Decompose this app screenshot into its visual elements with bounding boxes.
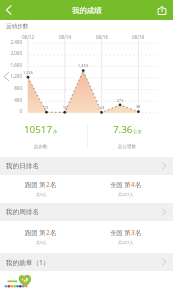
staticText: 22 <box>38 105 54 110</box>
staticText: 7.36 <box>113 123 133 136</box>
staticText: 名 <box>50 229 57 237</box>
staticText: 全国 第 <box>110 180 131 189</box>
staticText: 名 <box>50 181 57 189</box>
staticText: 我的成绩 <box>72 6 102 15</box>
staticText: 我的周排名 <box>6 208 39 216</box>
staticText: 跑团 第 <box>25 180 46 189</box>
button[interactable]: 全国 第 <box>83 223 169 251</box>
staticText: 我的日排名 <box>6 162 39 170</box>
button[interactable]: 跑团 第 <box>0 175 84 203</box>
staticText: 4 <box>131 180 135 189</box>
button[interactable]: Medal <box>2 273 36 295</box>
staticText: 步 <box>53 129 58 135</box>
staticText: 08/14 <box>56 34 74 40</box>
staticText: 公里 <box>133 129 142 135</box>
staticText: 2 <box>46 228 50 237</box>
staticText: 总公里数 <box>118 144 136 150</box>
staticText: 0 <box>0 108 22 114</box>
button[interactable]: Back <box>0 0 20 20</box>
button[interactable]: 全国 第 <box>83 175 169 203</box>
staticText: 我的勋章（1） <box>6 258 50 267</box>
staticText: 1,200 <box>0 73 22 79</box>
staticText: 08/16 <box>93 34 111 40</box>
staticText: 全国 第 <box>110 228 131 237</box>
staticText: 38 <box>130 104 146 109</box>
staticText: 16 <box>57 105 73 110</box>
staticText: 3 <box>131 228 135 237</box>
staticText: 2,400 <box>0 39 22 45</box>
staticText: 1,226 <box>20 70 36 75</box>
button[interactable]: Previous week <box>0 70 13 83</box>
staticText: 08/18 <box>129 34 147 40</box>
staticText: 10517 <box>24 123 53 136</box>
staticText: 名 <box>135 181 142 189</box>
staticText: 跑团 第 <box>25 228 46 237</box>
button[interactable]: Share <box>151 0 173 20</box>
staticText: 名 <box>135 229 142 237</box>
button[interactable]: 我的勋章（1） <box>0 253 173 271</box>
button[interactable]: 跑团 第 <box>0 223 84 251</box>
button[interactable]: 我的日排名 <box>0 157 173 175</box>
staticText: 运动步数 <box>6 23 29 30</box>
staticText: 总步数 <box>34 144 48 150</box>
staticText: 共227人 <box>118 240 134 246</box>
staticText: 400 <box>0 97 22 103</box>
staticText: 08/12 <box>19 34 37 40</box>
staticText: 800 <box>0 85 22 91</box>
staticText: 1,453 <box>75 63 91 68</box>
staticText: 2,000 <box>0 50 22 56</box>
staticText: 14 <box>94 105 110 110</box>
staticText: 共227人 <box>118 192 134 198</box>
staticText: 共9人 <box>36 240 47 246</box>
staticText: 273 <box>112 98 128 103</box>
staticText: 共9人 <box>36 192 47 198</box>
button[interactable]: 我的周排名 <box>0 203 173 221</box>
staticText: 2 <box>46 180 50 189</box>
staticText: 1,600 <box>0 62 22 68</box>
